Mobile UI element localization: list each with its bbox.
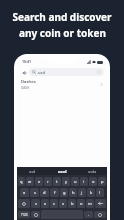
staticText: y xyxy=(65,179,68,184)
button[interactable]: f xyxy=(50,188,59,197)
button[interactable]: c xyxy=(50,199,58,208)
button[interactable]: Symbols xyxy=(18,211,30,218)
staticText: w xyxy=(28,179,32,184)
staticText: v xyxy=(62,201,65,206)
staticText: a xyxy=(23,190,26,195)
staticText: b xyxy=(71,201,74,206)
button[interactable]: Backspace xyxy=(95,199,106,208)
staticText: n xyxy=(80,201,83,206)
staticText: j xyxy=(81,190,83,195)
button[interactable]: d xyxy=(40,188,49,197)
staticText: DASH xyxy=(21,86,30,90)
button[interactable]: x xyxy=(41,199,49,208)
button[interactable]: m xyxy=(86,199,94,208)
button[interactable]: v xyxy=(59,199,67,208)
button[interactable]: Emoji xyxy=(31,211,40,218)
button[interactable]: g xyxy=(60,188,68,197)
button[interactable]: used xyxy=(47,167,77,175)
button[interactable]: y xyxy=(62,177,70,186)
staticText: x xyxy=(44,201,47,206)
staticText: ?123 xyxy=(21,213,28,217)
button[interactable]: n xyxy=(77,199,85,208)
button[interactable]: w xyxy=(26,177,34,186)
button[interactable]: usda xyxy=(77,167,107,175)
button[interactable]: Search xyxy=(94,211,106,218)
button[interactable]: i xyxy=(80,177,88,186)
button[interactable]: t xyxy=(53,177,61,186)
button[interactable]: Dashes xyxy=(17,78,107,91)
staticText: u xyxy=(74,179,77,184)
button[interactable]: k xyxy=(87,188,95,197)
staticText: z xyxy=(35,201,37,206)
staticText: used xyxy=(58,169,67,174)
staticText: 10:41 xyxy=(22,59,31,64)
staticText: p xyxy=(101,179,104,184)
staticText: s xyxy=(34,190,36,195)
staticText: q xyxy=(20,179,23,184)
staticText: k xyxy=(90,190,93,195)
staticText: i xyxy=(83,179,85,184)
staticText: . xyxy=(88,212,90,217)
button[interactable]: Back xyxy=(20,68,29,77)
button[interactable]: r xyxy=(44,177,52,186)
button[interactable]: s xyxy=(30,188,39,197)
staticText: m xyxy=(88,201,92,206)
button[interactable]: Period xyxy=(84,211,93,218)
staticText: h xyxy=(72,190,75,195)
button[interactable]: j xyxy=(78,188,86,197)
button[interactable]: z xyxy=(31,199,40,208)
button[interactable]: e xyxy=(35,177,43,186)
button[interactable]: b xyxy=(68,199,76,208)
button[interactable]: q xyxy=(18,177,25,186)
staticText: f xyxy=(54,190,56,195)
button[interactable]: a xyxy=(20,188,29,197)
button[interactable]: usd xyxy=(17,167,47,175)
button[interactable]: Shift xyxy=(18,199,30,208)
staticText: o xyxy=(92,179,95,184)
button[interactable]: l xyxy=(96,188,104,197)
staticText: usd xyxy=(38,70,45,75)
button[interactable]: usd xyxy=(29,68,104,76)
staticText: usd xyxy=(29,169,36,174)
button[interactable]: p xyxy=(98,177,106,186)
button[interactable]: o xyxy=(89,177,97,186)
staticText: Search and discover xyxy=(12,10,112,24)
staticText: c xyxy=(53,201,55,206)
staticText: Dashes xyxy=(21,79,36,85)
staticText: l xyxy=(99,190,101,195)
button[interactable]: h xyxy=(69,188,77,197)
staticText: usda xyxy=(88,169,97,174)
staticText: t xyxy=(56,179,58,184)
staticText: r xyxy=(47,179,49,184)
button[interactable]: u xyxy=(71,177,79,186)
staticText: g xyxy=(63,190,66,195)
staticText: e xyxy=(38,179,41,184)
button[interactable]: Clear xyxy=(97,70,101,74)
staticText: d xyxy=(43,190,46,195)
staticText: any coin or token xyxy=(19,26,106,40)
